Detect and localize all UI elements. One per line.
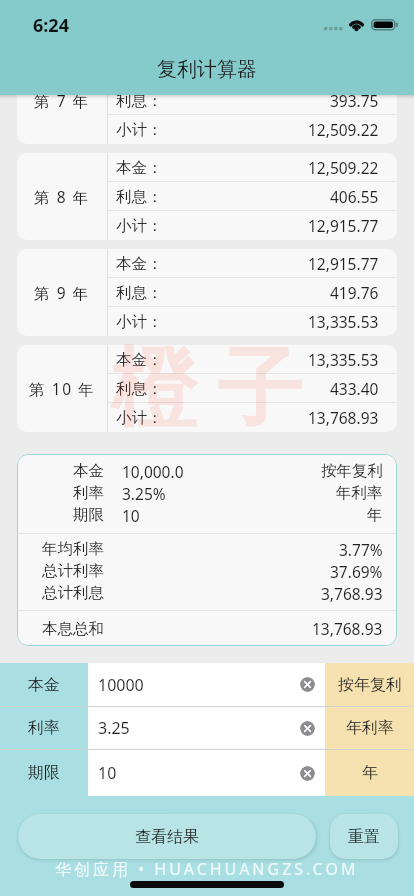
- staticText: 年均利率: [42, 539, 104, 559]
- staticText: 小计：: [116, 312, 163, 332]
- button[interactable]: 3.25: [88, 707, 325, 749]
- staticText: 13,335.53: [308, 349, 379, 370]
- staticText: 年: [362, 763, 378, 783]
- button[interactable]: Clear 利率: [300, 721, 315, 736]
- staticText: 本金: [73, 461, 104, 481]
- staticText: 查看结果: [135, 827, 199, 847]
- staticText: 10: [122, 505, 140, 526]
- staticText: 年: [367, 505, 383, 525]
- staticText: 10,000.0: [122, 461, 184, 482]
- button[interactable]: 第 8 年: [17, 153, 397, 240]
- staticText: 利息：: [116, 283, 163, 303]
- button[interactable]: 第 9 年: [17, 249, 397, 336]
- staticText: 第 10 年: [29, 378, 96, 399]
- staticText: 12,509.22: [308, 157, 379, 178]
- staticText: 本金：: [116, 158, 163, 178]
- staticText: 本金：: [116, 350, 163, 370]
- staticText: 总计利率: [42, 561, 104, 581]
- staticText: 利率: [73, 483, 104, 503]
- staticText: 10: [98, 762, 117, 784]
- button[interactable]: 年: [325, 750, 414, 796]
- staticText: 6:24: [33, 13, 69, 38]
- staticText: 3.25%: [122, 483, 166, 504]
- staticText: 年利率: [346, 718, 394, 738]
- button[interactable]: 10000: [88, 663, 325, 706]
- staticText: 第 8 年: [34, 186, 90, 207]
- staticText: 406.55: [330, 186, 379, 207]
- staticText: 本金：: [116, 62, 163, 82]
- staticText: 年利率: [336, 483, 383, 503]
- button[interactable]: 第 10 年: [17, 345, 397, 432]
- staticText: 3.77%: [339, 539, 383, 560]
- staticText: 橙子: [101, 335, 313, 443]
- button[interactable]: 查看结果: [18, 814, 316, 859]
- button[interactable]: 年利率: [325, 707, 414, 749]
- staticText: 利息：: [116, 187, 163, 207]
- staticText: 华创应用 • HUACHUANGZS.COM: [55, 858, 359, 880]
- staticText: 本息总和: [42, 619, 104, 639]
- staticText: 重置: [348, 827, 380, 847]
- staticText: 本金: [28, 675, 60, 695]
- staticText: 393.75: [330, 90, 379, 111]
- staticText: 期限: [28, 763, 60, 783]
- staticText: 10000: [98, 674, 144, 696]
- staticText: 3,768.93: [321, 583, 383, 604]
- staticText: 按年复利: [321, 461, 383, 481]
- staticText: 第 9 年: [34, 282, 90, 303]
- staticText: 12,915.77: [308, 215, 379, 236]
- button[interactable]: Clear 本金: [300, 677, 315, 692]
- button[interactable]: 10: [88, 750, 325, 796]
- staticText: 利率: [28, 718, 60, 738]
- staticText: 433.40: [330, 378, 379, 399]
- staticText: 13,768.93: [312, 618, 383, 639]
- button[interactable]: 期限: [0, 750, 88, 796]
- staticText: 利息：: [116, 379, 163, 399]
- staticText: 本金：: [116, 254, 163, 274]
- button[interactable]: 重置: [330, 814, 398, 859]
- staticText: 小计：: [116, 408, 163, 428]
- button[interactable]: 利率: [0, 707, 88, 749]
- button[interactable]: Clear 期限: [300, 766, 315, 781]
- staticText: 小计：: [116, 120, 163, 140]
- staticText: 12,509.22: [308, 119, 379, 140]
- staticText: 13,768.93: [308, 407, 379, 428]
- staticText: 小计：: [116, 216, 163, 236]
- staticText: 总计利息: [42, 583, 104, 603]
- staticText: 第 7 年: [34, 90, 90, 111]
- staticText: 3.25: [98, 717, 130, 739]
- staticText: 按年复利: [338, 675, 402, 695]
- staticText: 37.69%: [330, 561, 383, 582]
- staticText: 期限: [73, 505, 104, 525]
- staticText: 419.76: [330, 282, 379, 303]
- staticText: 复利计算器: [157, 57, 257, 82]
- staticText: 12,915.77: [308, 253, 379, 274]
- staticText: 利息：: [116, 91, 163, 111]
- button[interactable]: 第 7 年: [17, 57, 397, 144]
- staticText: 13,335.53: [308, 311, 379, 332]
- button[interactable]: 本金: [0, 663, 88, 706]
- button[interactable]: 按年复利: [325, 663, 414, 706]
